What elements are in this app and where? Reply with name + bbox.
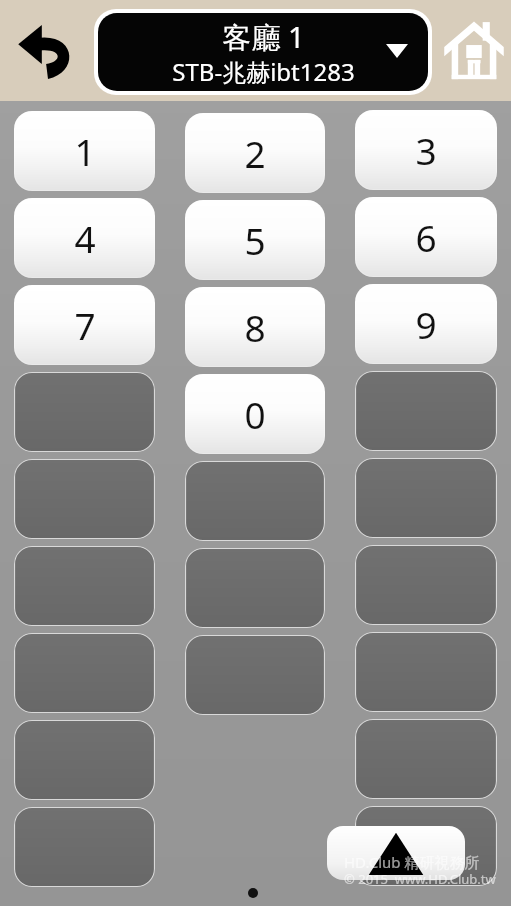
button[interactable]: 6	[355, 197, 497, 277]
staticText: 3	[415, 125, 437, 175]
button[interactable]: Key	[14, 807, 155, 887]
staticText: 2	[244, 128, 266, 178]
button[interactable]: 0	[185, 374, 325, 454]
button[interactable]: Key	[14, 633, 155, 713]
button[interactable]: Key	[185, 635, 325, 715]
staticText: STB-兆赫ibt1283	[172, 55, 355, 88]
button[interactable]: 9	[355, 284, 497, 364]
button[interactable]: Back	[8, 10, 88, 90]
staticText: HD.Club 精研視務所	[344, 852, 480, 872]
staticText: 8	[244, 302, 266, 352]
button[interactable]: 3	[355, 110, 497, 190]
button[interactable]: Key	[355, 632, 497, 712]
button[interactable]: 2	[185, 113, 325, 193]
staticText: 0	[244, 389, 266, 439]
button[interactable]: Key	[185, 461, 325, 541]
button[interactable]: Key	[14, 546, 155, 626]
button[interactable]: Key	[14, 459, 155, 539]
button[interactable]: 8	[185, 287, 325, 367]
staticText: © 2015 www.HD.Club.tw	[344, 870, 496, 888]
button[interactable]: Key	[355, 719, 497, 799]
button[interactable]: Key	[14, 372, 155, 452]
staticText: 6	[415, 212, 437, 262]
button[interactable]: 客廳 1	[94, 9, 432, 95]
staticText: 5	[244, 215, 266, 265]
button[interactable]: Scroll up	[327, 826, 465, 880]
button[interactable]: 1	[14, 111, 155, 191]
staticText: 7	[74, 300, 96, 350]
button[interactable]: 5	[185, 200, 325, 280]
button[interactable]: Key	[355, 806, 497, 886]
staticText: 4	[74, 213, 96, 263]
button[interactable]: Home	[440, 8, 508, 92]
staticText: 9	[415, 299, 437, 349]
button[interactable]: Key	[355, 371, 497, 451]
staticText: 1	[74, 126, 96, 176]
button[interactable]: Key	[355, 458, 497, 538]
button[interactable]: Key	[14, 720, 155, 800]
button[interactable]: Key	[185, 548, 325, 628]
button[interactable]: 4	[14, 198, 155, 278]
staticText: 客廳 1	[222, 17, 305, 53]
button[interactable]: 7	[14, 285, 155, 365]
button[interactable]: Key	[355, 545, 497, 625]
